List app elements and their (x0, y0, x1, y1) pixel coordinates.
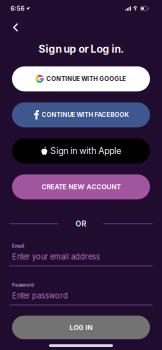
staticText: 6:56 (10, 5, 24, 12)
staticText: OR (75, 219, 86, 228)
staticText: CONTINUE WITH FACEBOOK (42, 111, 129, 119)
staticText: Email (12, 243, 24, 249)
staticText: Enter password (12, 291, 68, 300)
staticText: CONTINUE WITH GOOGLE (46, 75, 126, 83)
staticText: Sign in with Apple (50, 146, 121, 156)
button[interactable]: Back (12, 20, 27, 35)
staticText: Enter your email address (12, 252, 100, 261)
staticText: CREATE NEW ACCOUNT (41, 183, 120, 191)
staticText: Sign up or Log in. (38, 43, 123, 55)
staticText: Password (12, 282, 34, 288)
button[interactable]: LOG IN (12, 316, 150, 339)
button[interactable]: CONTINUE WITH FACEBOOK (12, 102, 150, 127)
staticText: LOG IN (69, 323, 92, 331)
button[interactable]: CONTINUE WITH GOOGLE (12, 66, 150, 91)
button[interactable]: Sign in with Apple (12, 138, 150, 163)
button[interactable]: CREATE NEW ACCOUNT (12, 174, 150, 199)
